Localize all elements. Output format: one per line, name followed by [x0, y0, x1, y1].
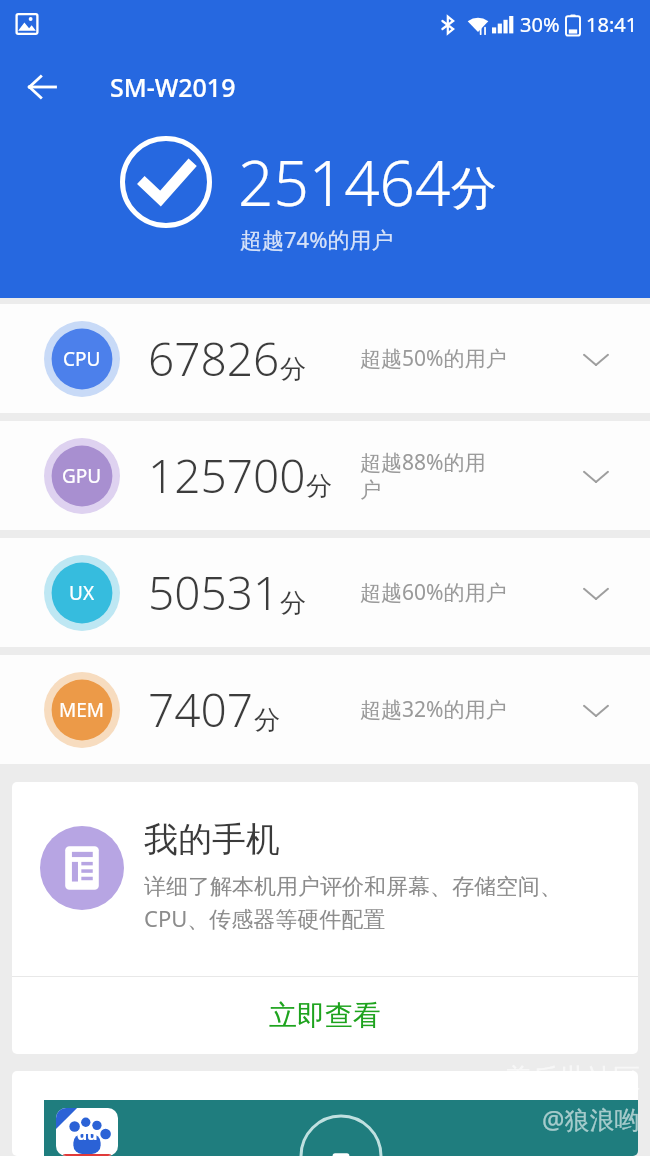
button[interactable]: Expand CPU — [568, 331, 624, 387]
staticText: 超越74%的用户 — [240, 224, 394, 254]
staticText: 分 — [306, 470, 332, 503]
staticText: 超越88%的用 — [360, 448, 486, 477]
button[interactable]: du — [12, 1071, 638, 1156]
staticText: 7407 — [148, 678, 254, 741]
staticText: 详细了解本机用户评价和屏幕、存储空间、CPU、传感器等硬件配置 — [144, 873, 616, 934]
button[interactable]: GPU — [0, 421, 650, 530]
staticText: 立即查看 — [269, 998, 381, 1033]
staticText: SM-W2019 — [110, 70, 236, 104]
button[interactable]: 立即查看 — [12, 977, 638, 1054]
staticText: MEM — [59, 697, 105, 723]
button[interactable]: Expand UX — [568, 565, 624, 621]
staticText: GPU — [62, 463, 102, 489]
button[interactable]: 我的手机 — [12, 782, 638, 976]
staticText: 我的手机 — [144, 818, 280, 861]
staticText: 18:41 — [586, 11, 638, 38]
button[interactable]: Back — [14, 59, 70, 115]
staticText: 分 — [280, 353, 306, 386]
staticText: 分 — [254, 704, 280, 737]
button[interactable]: Expand GPU — [568, 448, 624, 504]
staticText: 户 — [360, 477, 381, 503]
staticText: 超越60%的用户 — [360, 578, 507, 607]
staticText: 盖乐世社区 — [505, 1062, 640, 1096]
staticText: 125700 — [148, 444, 306, 507]
staticText: du — [77, 1123, 98, 1145]
button[interactable]: MEM — [0, 655, 650, 764]
staticText: 超越50%的用户 — [360, 344, 507, 373]
staticText: 67826 — [148, 327, 280, 390]
staticText: 30% — [520, 11, 560, 38]
button[interactable]: Expand MEM — [568, 682, 624, 738]
staticText: @狼浪哟 — [542, 1102, 640, 1136]
button[interactable]: CPU — [0, 304, 650, 413]
staticText: 50531 — [148, 561, 280, 624]
staticText: 分 — [280, 587, 306, 620]
button[interactable]: UX — [0, 538, 650, 647]
staticText: 超越32%的用户 — [360, 695, 507, 724]
staticText: UX — [69, 580, 95, 606]
staticText: CPU — [63, 346, 101, 372]
staticText: 251464 — [238, 140, 451, 224]
staticText: 分 — [451, 160, 497, 218]
